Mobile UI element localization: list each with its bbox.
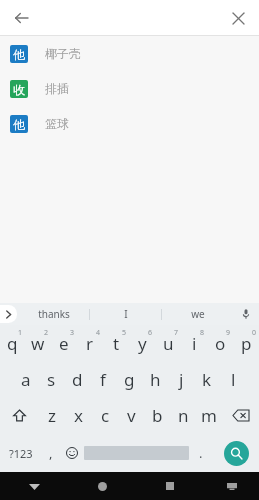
staticText: y — [138, 332, 147, 355]
button[interactable]: h — [142, 361, 168, 397]
staticText: f — [100, 368, 106, 391]
button[interactable]: , — [41, 434, 60, 472]
staticText: 5 — [122, 328, 127, 338]
button[interactable]: s — [38, 361, 64, 397]
staticText: 9 — [226, 328, 231, 338]
staticText: , — [49, 444, 53, 462]
staticText: 3 — [70, 328, 75, 338]
staticText: l — [231, 368, 236, 391]
button[interactable]: w — [25, 325, 51, 361]
staticText: ?123 — [9, 446, 33, 461]
button[interactable]: i — [181, 325, 207, 361]
button[interactable]: b — [144, 397, 170, 434]
button[interactable]: Home — [68, 472, 136, 500]
staticText: p — [241, 332, 252, 355]
staticText: s — [47, 368, 56, 391]
staticText: k — [202, 368, 212, 391]
staticText: 排插 — [45, 81, 69, 96]
button[interactable]: Hide keyboard — [0, 472, 68, 500]
staticText: 0 — [252, 328, 257, 338]
button[interactable]: m — [196, 397, 222, 434]
staticText: v — [127, 404, 136, 427]
button[interactable]: g — [116, 361, 142, 397]
staticText: g — [124, 368, 135, 391]
button[interactable]: a — [13, 361, 38, 397]
button[interactable]: Shift — [0, 397, 38, 434]
button[interactable]: t — [103, 325, 129, 361]
button[interactable]: thanks — [19, 303, 89, 325]
button[interactable]: Close — [223, 3, 253, 33]
staticText: 1 — [18, 328, 23, 338]
staticText: w — [31, 332, 45, 355]
staticText: q — [7, 332, 18, 355]
staticText: t — [113, 332, 120, 355]
button[interactable]: l — [220, 361, 246, 397]
button[interactable]: Voice input — [233, 303, 259, 325]
staticText: 收 — [13, 82, 25, 97]
button[interactable]: x — [65, 397, 92, 434]
button[interactable]: r — [77, 325, 103, 361]
button[interactable]: Back — [6, 3, 36, 33]
button[interactable]: Switch keyboard — [204, 472, 259, 500]
staticText: 他 — [13, 117, 25, 132]
button[interactable]: 收 — [0, 71, 259, 106]
staticText: d — [72, 368, 83, 391]
button[interactable]: f — [90, 361, 116, 397]
button[interactable]: d — [64, 361, 90, 397]
staticText: b — [152, 404, 163, 427]
button[interactable]: j — [168, 361, 194, 397]
staticText: x — [74, 404, 83, 427]
staticText: 7 — [174, 328, 179, 338]
button[interactable]: we — [162, 303, 233, 325]
button[interactable]: Emoji — [60, 434, 84, 472]
staticText: m — [201, 404, 217, 427]
button[interactable]: e — [51, 325, 77, 361]
button[interactable]: . — [189, 434, 213, 472]
button[interactable]: v — [118, 397, 144, 434]
button[interactable]: Expand suggestions — [0, 305, 17, 323]
button[interactable]: o — [207, 325, 233, 361]
staticText: we — [191, 307, 205, 321]
button[interactable]: z — [38, 397, 65, 434]
button[interactable]: c — [92, 397, 118, 434]
staticText: 篮球 — [45, 116, 69, 131]
button[interactable]: u — [155, 325, 181, 361]
staticText: r — [86, 332, 94, 355]
staticText: n — [178, 404, 189, 427]
staticText: I — [124, 307, 128, 321]
staticText: . — [199, 444, 203, 462]
staticText: i — [192, 332, 197, 355]
button[interactable]: ?123 — [0, 434, 41, 472]
button[interactable]: k — [194, 361, 220, 397]
button[interactable]: 他 — [0, 36, 259, 71]
staticText: 2 — [44, 328, 49, 338]
staticText: thanks — [38, 307, 70, 321]
button[interactable]: q — [0, 325, 25, 361]
staticText: 6 — [148, 328, 153, 338]
staticText: a — [21, 368, 31, 391]
staticText: 8 — [200, 328, 205, 338]
staticText: e — [59, 332, 69, 355]
staticText: 椰子壳 — [45, 46, 81, 61]
staticText: 他 — [13, 47, 25, 62]
staticText: h — [150, 368, 161, 391]
button[interactable]: Delete — [222, 397, 259, 434]
button[interactable]: 他 — [0, 106, 259, 141]
button[interactable]: p — [233, 325, 259, 361]
staticText: j — [179, 368, 184, 391]
button[interactable]: n — [170, 397, 196, 434]
staticText: o — [215, 332, 226, 355]
staticText: u — [163, 332, 174, 355]
button[interactable]: Search — [224, 441, 249, 466]
button[interactable]: Recents — [136, 472, 204, 500]
staticText: 4 — [96, 328, 101, 338]
button[interactable]: I — [90, 303, 161, 325]
button[interactable]: y — [129, 325, 155, 361]
staticText: z — [48, 404, 56, 427]
staticText: c — [101, 404, 110, 427]
